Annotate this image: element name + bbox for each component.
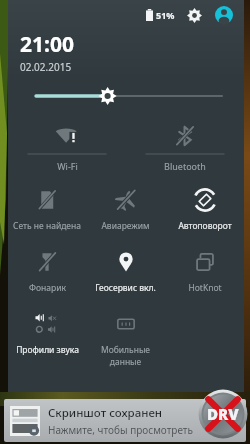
button[interactable]: Wi-Fi xyxy=(8,120,126,182)
other: Watermark xyxy=(197,388,249,440)
staticText: 51% xyxy=(156,9,175,21)
staticText: 02.02.2015 xyxy=(20,60,72,74)
staticText: 21:00 xyxy=(20,30,74,59)
button[interactable]: Сеть не найдена xyxy=(8,182,86,244)
staticText: Скриншот сохранен xyxy=(48,405,163,421)
staticText: Профили звука xyxy=(16,344,79,356)
button[interactable]: Settings xyxy=(184,5,204,25)
button[interactable]: User profile xyxy=(213,4,235,26)
button[interactable]: Автоповорот xyxy=(165,182,244,244)
staticText: DRV xyxy=(207,404,239,424)
staticText: Нажмите, чтобы просмотреть xyxy=(48,423,193,437)
staticText: HotKnot xyxy=(188,282,222,294)
button[interactable]: Геосервис вкл. xyxy=(86,244,165,306)
button[interactable]: Скриншот сохранен xyxy=(4,399,246,442)
button[interactable]: Bluetooth xyxy=(126,120,244,182)
staticText: Авиарежим xyxy=(101,220,150,232)
staticText: Мобильные данные xyxy=(87,344,164,368)
staticText: Геосервис вкл. xyxy=(95,282,156,294)
button[interactable]: Brightness xyxy=(8,80,244,112)
button[interactable]: Мобильные данные xyxy=(86,306,165,368)
staticText: Фонарик xyxy=(29,282,66,294)
staticText: Bluetooth xyxy=(164,160,206,172)
staticText: Автоповорот xyxy=(178,220,232,232)
button[interactable]: Профили звука xyxy=(8,306,86,368)
staticText: Wi-Fi xyxy=(57,160,78,172)
staticText: Сеть не найдена xyxy=(13,220,81,232)
button[interactable]: HotKnot xyxy=(165,244,244,306)
button[interactable]: Фонарик xyxy=(8,244,86,306)
button[interactable]: Авиарежим xyxy=(86,182,165,244)
